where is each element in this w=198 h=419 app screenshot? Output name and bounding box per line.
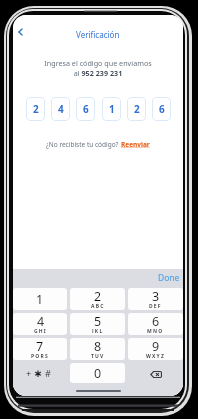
staticText: Verificación: [76, 29, 120, 40]
button[interactable]: 8: [70, 338, 125, 360]
staticText: 7: [36, 338, 44, 355]
staticText: MNO: [147, 328, 164, 333]
staticText: GHI: [34, 328, 47, 333]
staticText: 4: [58, 102, 64, 116]
button[interactable]: 5: [70, 313, 125, 335]
button[interactable]: 1: [102, 97, 121, 121]
staticText: 6: [152, 313, 160, 330]
staticText: 4: [37, 313, 45, 330]
button[interactable]: + ✱ #: [13, 363, 67, 383]
staticText: TUV: [91, 353, 105, 358]
staticText: 2: [33, 102, 39, 116]
button[interactable]: 1: [13, 288, 67, 310]
button[interactable]: 6: [128, 313, 183, 335]
button[interactable]: 2: [127, 97, 146, 121]
button[interactable]: 2: [70, 288, 125, 310]
staticText: 6: [83, 102, 89, 116]
staticText: DEF: [149, 303, 162, 308]
button[interactable]: 4: [13, 313, 67, 335]
button[interactable]: 7: [13, 338, 67, 360]
button[interactable]: 0: [70, 363, 125, 383]
staticText: WXYZ: [146, 353, 166, 358]
button[interactable]: 6: [152, 97, 171, 121]
staticText: 5: [94, 313, 102, 330]
button[interactable]: 2: [26, 97, 45, 121]
staticText: 1: [36, 291, 44, 308]
staticText: 3: [152, 288, 160, 305]
staticText: 2: [94, 288, 102, 305]
staticText: Reenviar: [121, 140, 150, 149]
button[interactable]: Done: [158, 272, 180, 284]
staticText: Ingresa el código que enviamos: [13, 58, 183, 68]
staticText: 1: [109, 102, 115, 116]
button[interactable]: 3: [128, 288, 183, 310]
staticText: + ✱ #: [26, 367, 52, 379]
button[interactable]: Delete: [128, 363, 183, 383]
staticText: 8: [94, 338, 102, 355]
button[interactable]: 6: [76, 97, 95, 121]
button[interactable]: 4: [51, 97, 70, 121]
staticText: 2: [134, 102, 140, 116]
staticText: JKL: [92, 328, 104, 333]
staticText: Done: [158, 272, 180, 284]
staticText: al 952 239 231: [13, 68, 183, 78]
button[interactable]: Back: [13, 23, 29, 40]
button[interactable]: Reenviar: [121, 140, 150, 149]
staticText: ¿No recibiste tu código?: [46, 140, 121, 149]
staticText: 6: [159, 102, 165, 116]
button[interactable]: 9: [128, 338, 183, 360]
staticText: ABC: [91, 303, 105, 308]
staticText: 9: [152, 338, 160, 355]
staticText: 0: [94, 365, 102, 382]
staticText: PQRS: [31, 353, 49, 358]
